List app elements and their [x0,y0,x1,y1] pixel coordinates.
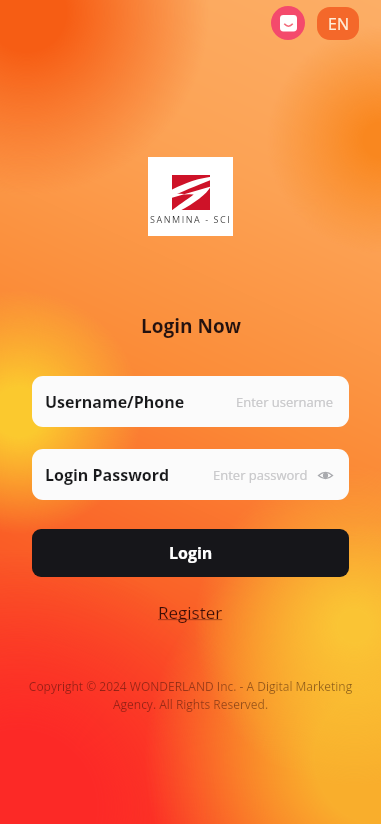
staticText: Username/Phone [45,391,185,413]
button[interactable]: Login Password [32,449,349,500]
button[interactable]: EN [317,7,359,40]
staticText: Copyright © 2024 WONDERLAND Inc. - A Dig… [14,678,367,713]
staticText: Login Password [45,464,170,486]
staticText: Enter password [213,466,308,484]
staticText: SANMINA - SCI [150,213,232,225]
staticText: Login [169,542,213,564]
staticText: Login Now [141,313,241,339]
button[interactable]: Show password [316,466,334,484]
button[interactable]: Register [152,599,229,626]
staticText: EN [328,13,349,35]
button[interactable]: Username/Phone [32,376,349,427]
staticText: Enter username [236,393,334,411]
button[interactable]: Support chat [271,6,305,40]
button[interactable]: Login [32,529,349,577]
staticText: Register [158,601,223,624]
